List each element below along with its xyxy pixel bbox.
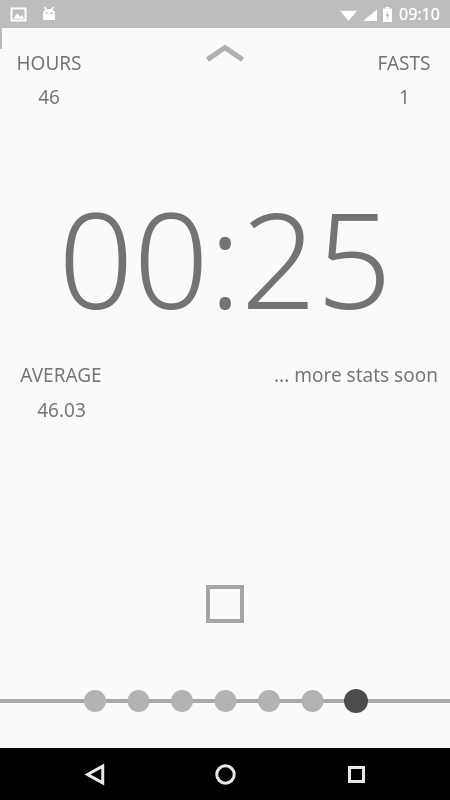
staticText: FASTS bbox=[377, 50, 431, 76]
staticText: 1 bbox=[399, 84, 410, 110]
staticText: 46 bbox=[38, 84, 60, 110]
button[interactable]: AVERAGE bbox=[12, 362, 110, 423]
staticText: 09:10 bbox=[399, 3, 440, 25]
button[interactable]: 00:25 bbox=[0, 168, 450, 338]
button[interactable]: Back bbox=[59, 748, 131, 800]
staticText: ... more stats soon bbox=[274, 362, 438, 388]
button[interactable]: Home bbox=[189, 748, 261, 800]
staticText: AVERAGE bbox=[20, 362, 102, 388]
button[interactable]: Stop fast bbox=[195, 574, 255, 634]
button[interactable]: FASTS bbox=[370, 50, 438, 110]
staticText: 00:25 bbox=[58, 168, 392, 338]
staticText: 46.03 bbox=[37, 397, 86, 423]
button[interactable]: Collapse stats bbox=[197, 36, 253, 72]
staticText: HOURS bbox=[16, 50, 82, 76]
button[interactable]: HOURS bbox=[12, 50, 86, 110]
button[interactable]: Recent apps bbox=[320, 748, 392, 800]
